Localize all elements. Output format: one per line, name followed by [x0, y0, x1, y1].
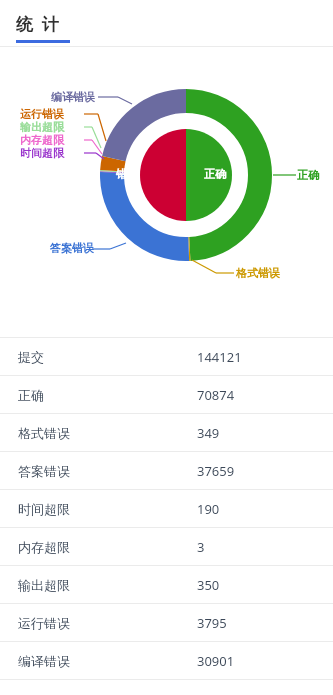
staticText: 正确 [204, 167, 226, 181]
staticText: 内存超限 [18, 539, 197, 555]
staticText: 正确 [18, 387, 197, 403]
staticText: 答案错误 [50, 241, 94, 255]
button[interactable]: 编译错误 [0, 642, 333, 679]
button[interactable]: 答案错误 [0, 452, 333, 489]
staticText: 时间超限 [18, 501, 197, 517]
button[interactable]: 格式错误 [0, 414, 333, 451]
staticText: 37659 [197, 462, 235, 480]
staticText: 144121 [197, 348, 242, 366]
staticText: 错误 [116, 167, 138, 181]
staticText: 编译错误 [51, 90, 95, 104]
staticText: 输出超限 [18, 577, 197, 593]
staticText: 30901 [197, 652, 235, 670]
button[interactable]: 统 计 [12, 6, 63, 41]
staticText: 格式错误 [18, 425, 197, 441]
button[interactable]: 内存超限 [0, 528, 333, 565]
staticText: 输出超限 [20, 120, 64, 134]
staticText: 190 [197, 500, 220, 518]
staticText: 70874 [197, 386, 235, 404]
button[interactable]: 运行错误 [0, 604, 333, 641]
button[interactable]: 时间超限 [0, 490, 333, 527]
staticText: 运行错误 [18, 615, 197, 631]
button[interactable]: 输出超限 [0, 566, 333, 603]
staticText: 内存超限 [20, 133, 64, 147]
staticText: 正确 [297, 168, 319, 182]
staticText: 3795 [197, 614, 227, 632]
button[interactable]: 正确 [0, 376, 333, 413]
staticText: 349 [197, 424, 220, 442]
staticText: 3 [197, 538, 205, 556]
staticText: 统 计 [16, 12, 59, 35]
staticText: 350 [197, 576, 220, 594]
staticText: 编译错误 [18, 653, 197, 669]
staticText: 提交 [18, 349, 197, 365]
staticText: 答案错误 [18, 463, 197, 479]
staticText: 时间超限 [20, 146, 64, 160]
staticText: 运行错误 [20, 107, 64, 121]
staticText: 格式错误 [236, 266, 280, 280]
button[interactable]: 提交 [0, 338, 333, 375]
